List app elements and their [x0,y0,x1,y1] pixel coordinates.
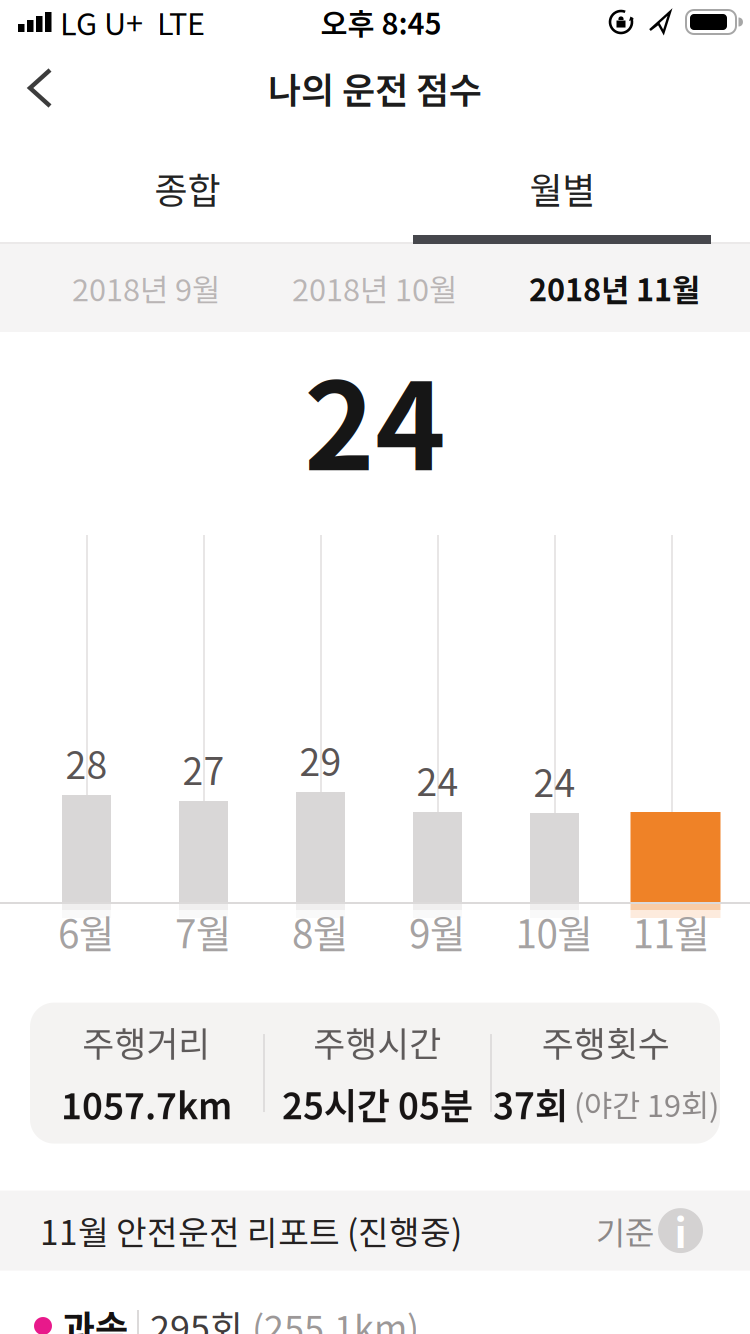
button[interactable]: 종합 [0,132,375,244]
staticText: 24 [304,333,446,503]
staticText: (255.1km) [252,1301,419,1334]
staticText: 과속 [62,1301,128,1334]
staticText: 2018년 10월 [292,266,457,310]
staticText: i [674,1202,686,1259]
staticText: 24 [416,753,458,806]
staticText: 종합 [154,163,220,213]
staticText: 11월 [632,904,710,959]
button[interactable]: 2018년 9월 [72,266,220,310]
staticText: 주행거리 [82,1017,210,1066]
staticText: LTE [157,0,205,44]
staticText: (야간 19회) [574,1082,719,1125]
staticText: 1057.7km [61,1078,232,1129]
staticText: 295회 [150,1301,243,1334]
staticText: 2018년 9월 [72,266,220,310]
staticText: 9월 [409,904,466,959]
staticText: 오후 8:45 [320,1,441,43]
button[interactable]: 기준 안내 [596,1202,703,1259]
staticText: 기준 [596,1208,654,1253]
staticText: 28 [65,736,107,789]
staticText: LG U+ [60,0,143,44]
staticText: 29 [299,733,341,786]
staticText: 7월 [175,904,232,959]
staticText: 8월 [292,904,349,959]
staticText: 6월 [58,904,115,959]
button[interactable]: 2018년 10월 [292,266,457,310]
staticText: 24 [533,754,575,807]
staticText: 주행횟수 [542,1017,670,1066]
staticText: 나의 운전 점수 [268,63,482,113]
staticText: 월별 [529,163,595,213]
staticText: 25시간 05분 [282,1078,473,1129]
staticText: 주행시간 [313,1017,441,1066]
button[interactable]: 뒤로 [0,48,66,128]
button[interactable]: 2018년 11월 [529,266,700,310]
staticText: 2018년 11월 [529,266,700,310]
staticText: 10월 [515,904,593,959]
staticText: 37회 [493,1078,568,1129]
button[interactable]: 월별 [375,132,750,244]
staticText: 11월 안전운전 리포트 (진행중) [40,1207,462,1254]
staticText: 27 [182,742,224,795]
